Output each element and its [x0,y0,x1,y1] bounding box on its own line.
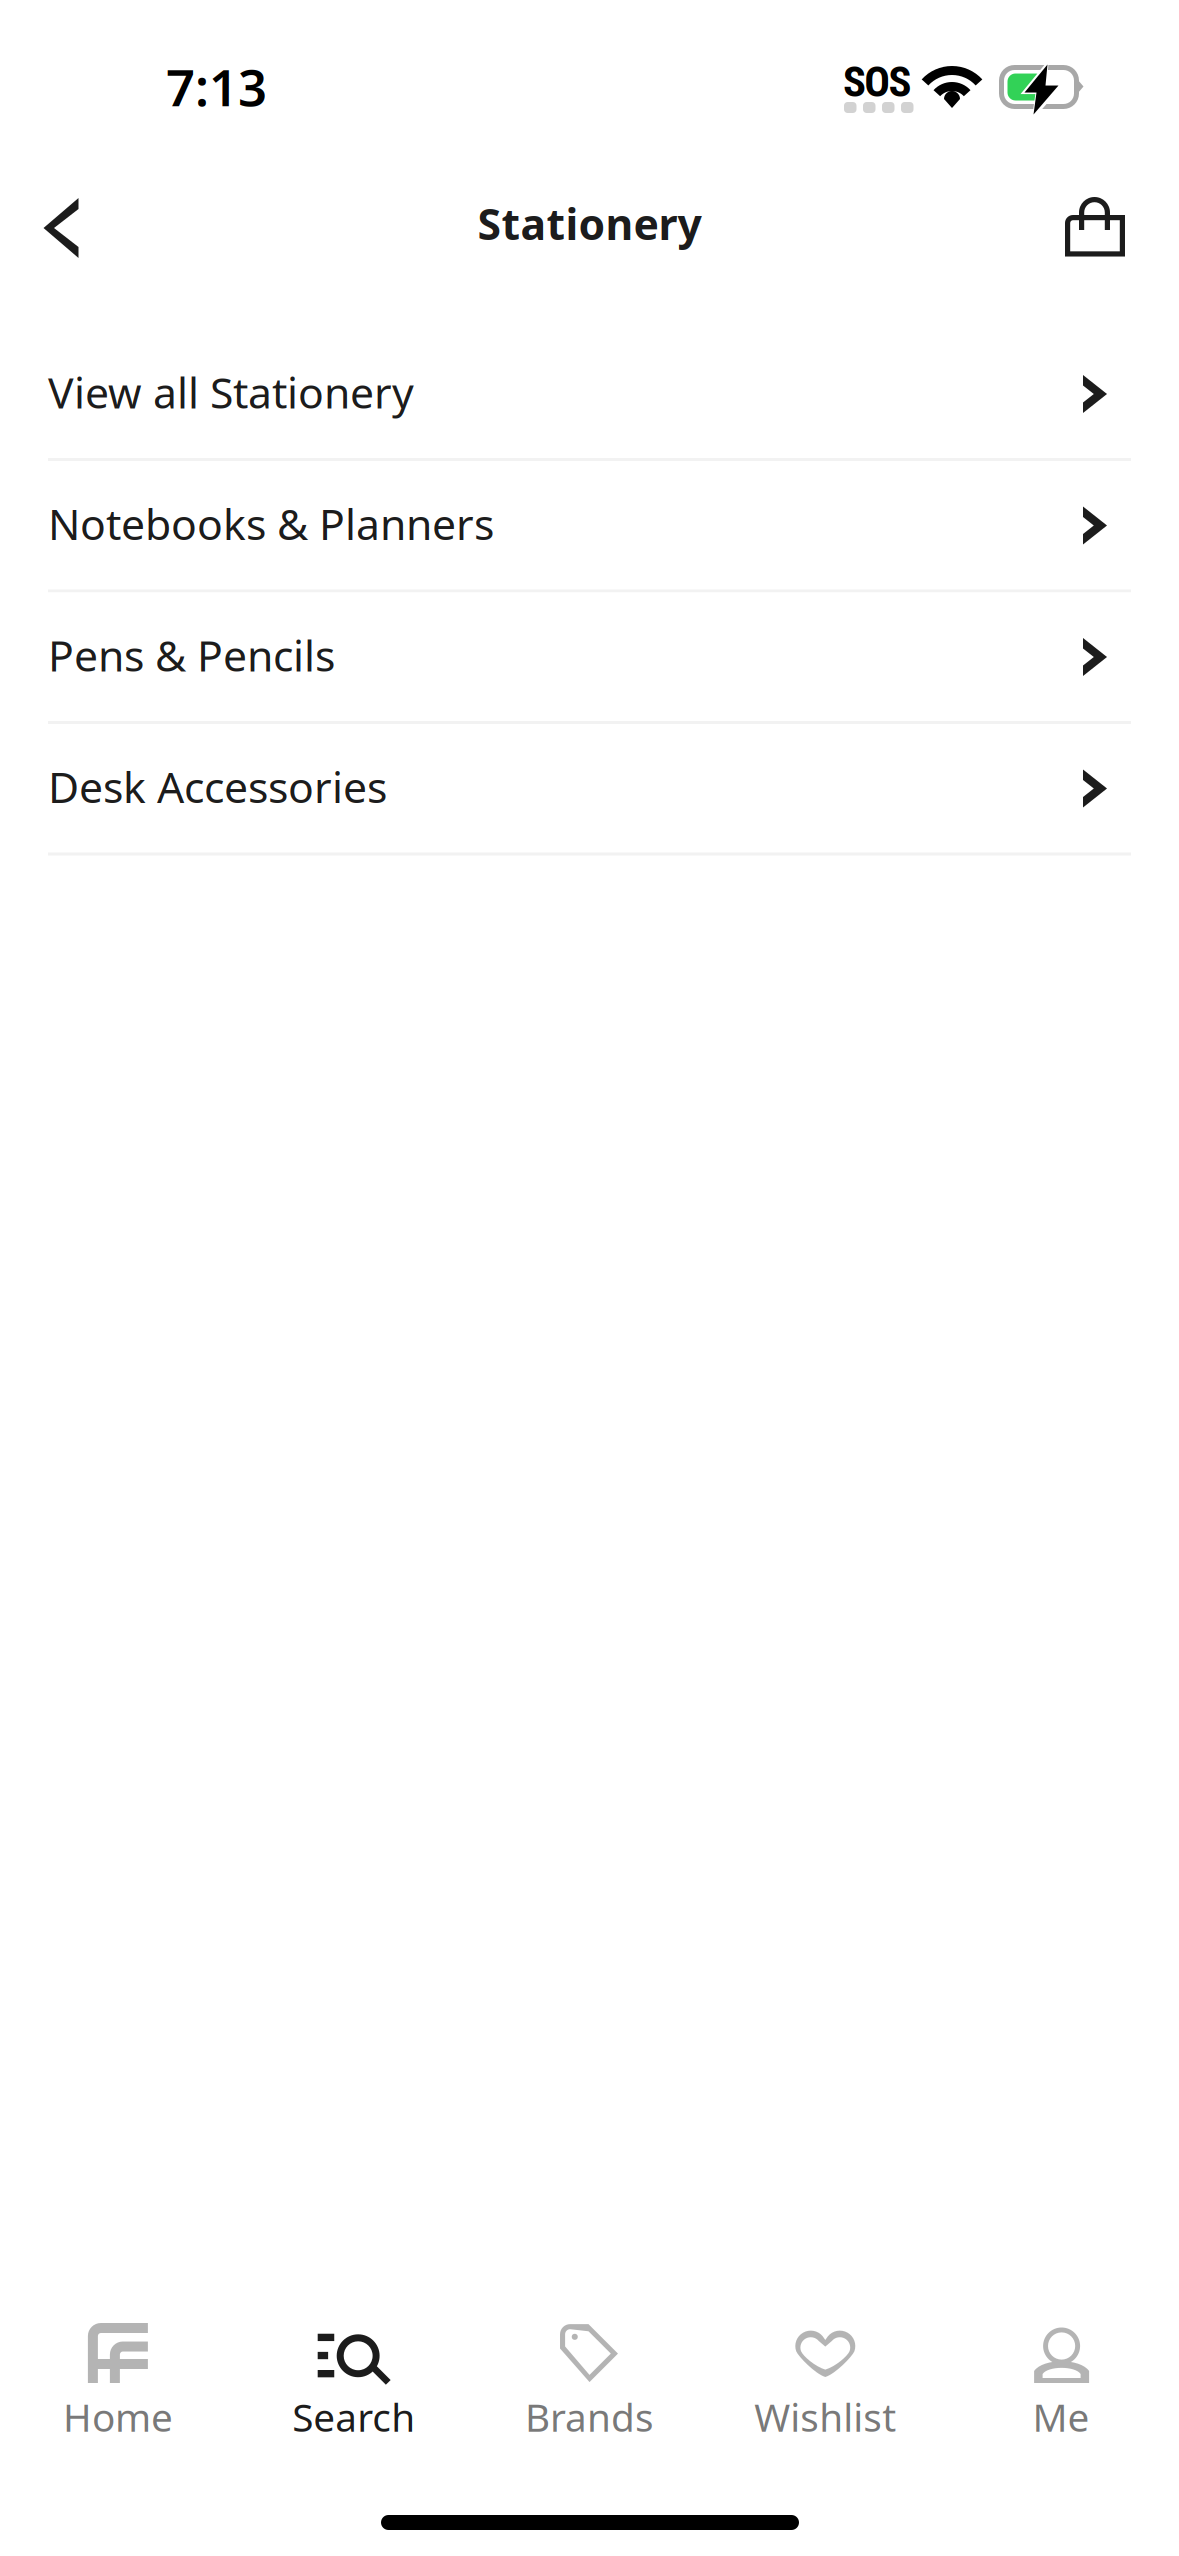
staticText: Desk Accessories [48,758,387,815]
staticText: Pens & Pencils [48,626,335,683]
button[interactable]: Home [0,2321,236,2443]
button[interactable]: Search [236,2321,472,2443]
staticText: View all Stationery [48,363,414,420]
staticText: Brands [525,2391,654,2442]
button[interactable]: View all Stationery [0,329,1179,461]
staticText: Home [63,2391,173,2442]
button[interactable]: Pens & Pencils [0,592,1179,724]
button[interactable]: Notebooks & Planners [0,461,1179,592]
staticText: Stationery [477,195,701,252]
staticText: Me [1033,2391,1090,2442]
staticText: SOS [843,57,911,107]
staticText: 7:13 [166,53,267,120]
button[interactable]: Brands [472,2321,707,2443]
button[interactable]: Back [6,169,116,287]
button[interactable]: Wishlist [707,2321,943,2443]
button[interactable]: Desk Accessories [0,724,1179,855]
staticText: Wishlist [754,2391,896,2442]
button[interactable]: Me [943,2321,1179,2443]
staticText: Notebooks & Planners [48,495,494,552]
staticText: Search [292,2391,415,2442]
button[interactable]: Shopping bag [1040,167,1150,285]
